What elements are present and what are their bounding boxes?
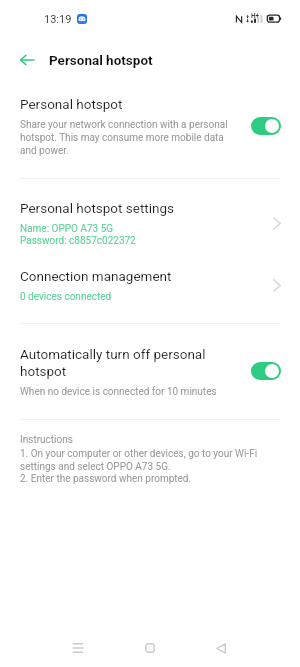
- staticText: Connection management: [20, 268, 172, 284]
- button[interactable]: Toggle: [251, 362, 281, 380]
- button[interactable]: Personal hotspot settings: [0, 200, 300, 247]
- staticText: Automatically turn off personal hotspot: [20, 346, 243, 379]
- button[interactable]: Automatically turn off personal hotspot: [0, 346, 300, 398]
- staticText: Personal hotspot: [49, 52, 153, 68]
- staticText: When no device is connected for 10 minut…: [20, 386, 217, 398]
- staticText: 1. On your computer or other devices, go…: [20, 448, 286, 473]
- staticText: 0 devices connected: [20, 291, 112, 303]
- button[interactable]: Personal hotspot: [0, 96, 300, 157]
- button[interactable]: Recent apps: [58, 633, 98, 663]
- staticText: H+: [251, 12, 260, 20]
- button[interactable]: Home: [130, 633, 170, 663]
- staticText: Password: c8857c022372: [20, 235, 136, 247]
- button[interactable]: Back: [17, 50, 37, 70]
- staticText: Name: OPPO A73 5G: [20, 223, 114, 235]
- staticText: 13:19: [44, 13, 72, 26]
- staticText: Instructions: [20, 434, 73, 446]
- staticText: Personal hotspot: [20, 96, 123, 112]
- button[interactable]: Connection management: [0, 268, 300, 303]
- button[interactable]: Toggle: [251, 117, 281, 135]
- button[interactable]: Back: [201, 633, 241, 663]
- staticText: Share your network connection with a per…: [20, 119, 234, 157]
- staticText: Personal hotspot settings: [20, 200, 175, 216]
- staticText: 2. Enter the password when prompted.: [20, 473, 192, 485]
